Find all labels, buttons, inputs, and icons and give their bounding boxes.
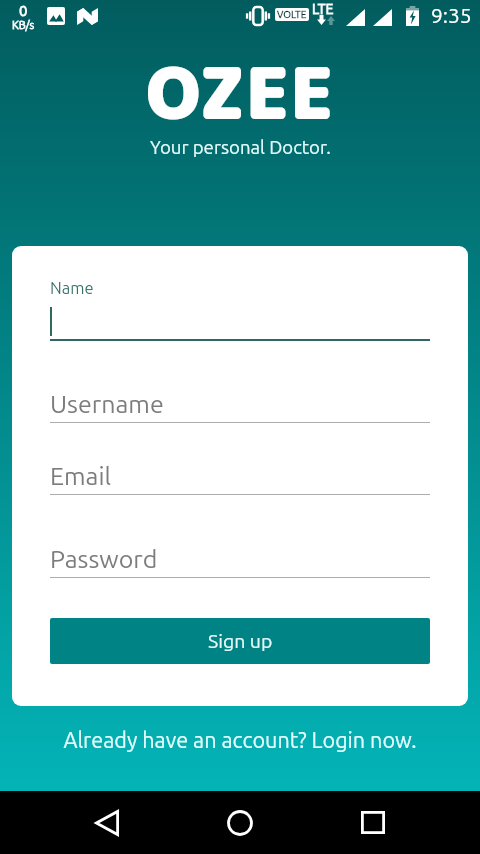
- staticText: OZEE: [146, 42, 335, 142]
- button[interactable]: Sign up: [50, 618, 430, 664]
- staticText: LTE: [312, 1, 334, 17]
- button[interactable]: Password: [50, 541, 430, 578]
- staticText: VOLTE: [277, 9, 307, 20]
- button[interactable]: Email: [50, 458, 430, 495]
- staticText: 9:35: [431, 3, 472, 27]
- button[interactable]: Recent apps: [330, 791, 416, 854]
- staticText: Your personal Doctor.: [150, 137, 331, 158]
- staticText: Email: [50, 462, 112, 490]
- staticText: Username: [50, 390, 164, 418]
- button[interactable]: Username: [50, 386, 430, 423]
- staticText: Sign up: [208, 630, 273, 652]
- staticText: Password: [50, 545, 158, 573]
- button[interactable]: Home: [197, 791, 283, 854]
- button[interactable]: Already have an account? Login now.: [0, 717, 480, 763]
- button[interactable]: Name: [50, 274, 430, 341]
- staticText: Name: [50, 279, 94, 297]
- staticText: 0: [19, 2, 28, 19]
- staticText: KB/s: [12, 19, 35, 31]
- button[interactable]: Back: [64, 791, 150, 854]
- staticText: Already have an account? Login now.: [63, 728, 417, 752]
